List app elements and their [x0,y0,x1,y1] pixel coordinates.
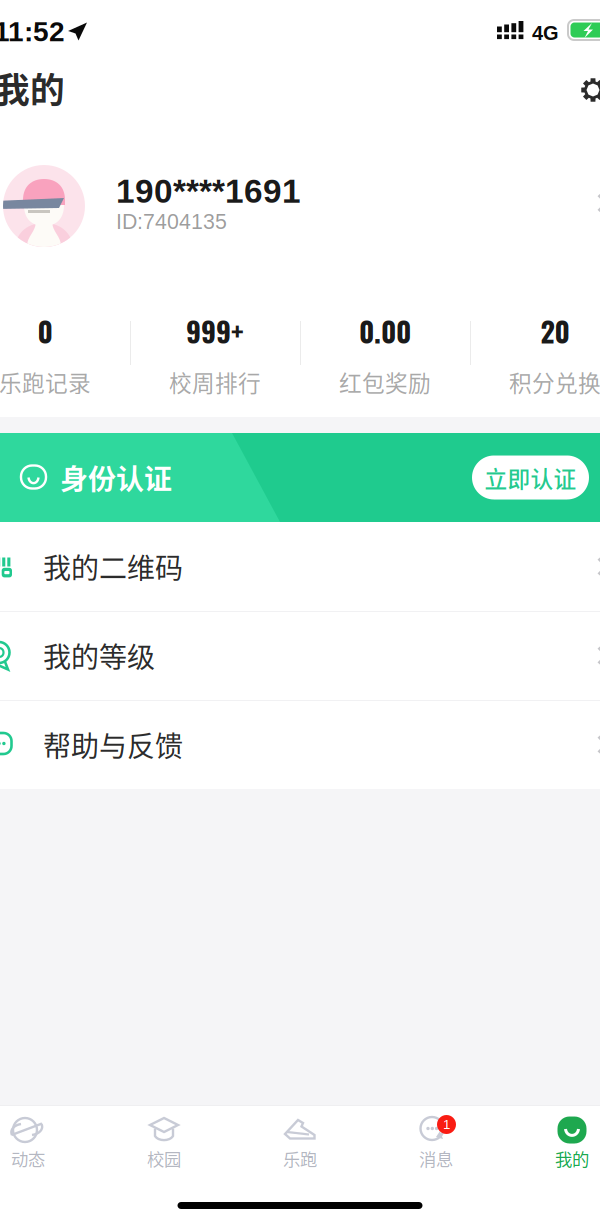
button[interactable]: Settings [571,60,600,116]
button[interactable]: 我的二维码 [0,522,600,611]
button[interactable]: 999+ [130,297,300,407]
staticText: 积分兑换 [509,365,600,398]
staticText: 动态 [11,1146,45,1171]
staticText: 1 [443,1117,450,1132]
button[interactable]: 身份认证 [0,433,600,522]
button[interactable]: 帮助与反馈 [0,700,600,789]
staticText: 4G [532,22,559,44]
staticText: 190****1691 [116,172,301,210]
staticText: 20 [540,310,569,351]
staticText: 999+ [186,310,244,351]
button[interactable]: 0.00 [300,297,470,407]
button[interactable]: 我的 [504,1105,600,1185]
button[interactable]: 校园 [96,1105,232,1185]
button[interactable]: 乐跑 [232,1105,368,1185]
staticText: 校园 [147,1146,181,1171]
button[interactable]: 20 [470,297,600,407]
staticText: 乐跑 [283,1146,317,1171]
staticText: 立即认证 [484,461,576,494]
staticText: 我的二维码 [43,546,183,587]
staticText: 0 [37,310,52,351]
staticText: 身份认证 [60,457,172,498]
staticText: 消息 [419,1146,453,1171]
staticText: 我的 [555,1146,589,1171]
staticText: ID:7404135 [116,210,227,233]
staticText: 帮助与反馈 [43,724,183,765]
button[interactable]: 我的等级 [0,611,600,700]
staticText: 我的 [0,63,65,113]
staticText: 校周排行 [169,365,261,398]
staticText: 0.00 [359,310,411,351]
button[interactable]: 190****1691 [0,138,600,268]
staticText: 乐跑记录 [0,365,91,398]
staticText: 红包奖励 [339,365,431,398]
button[interactable]: 动态 [0,1105,96,1185]
staticText: 11:52 [0,16,65,47]
staticText: 我的等级 [43,635,155,676]
button[interactable]: 1 [368,1105,504,1185]
button[interactable]: 0 [0,297,130,407]
